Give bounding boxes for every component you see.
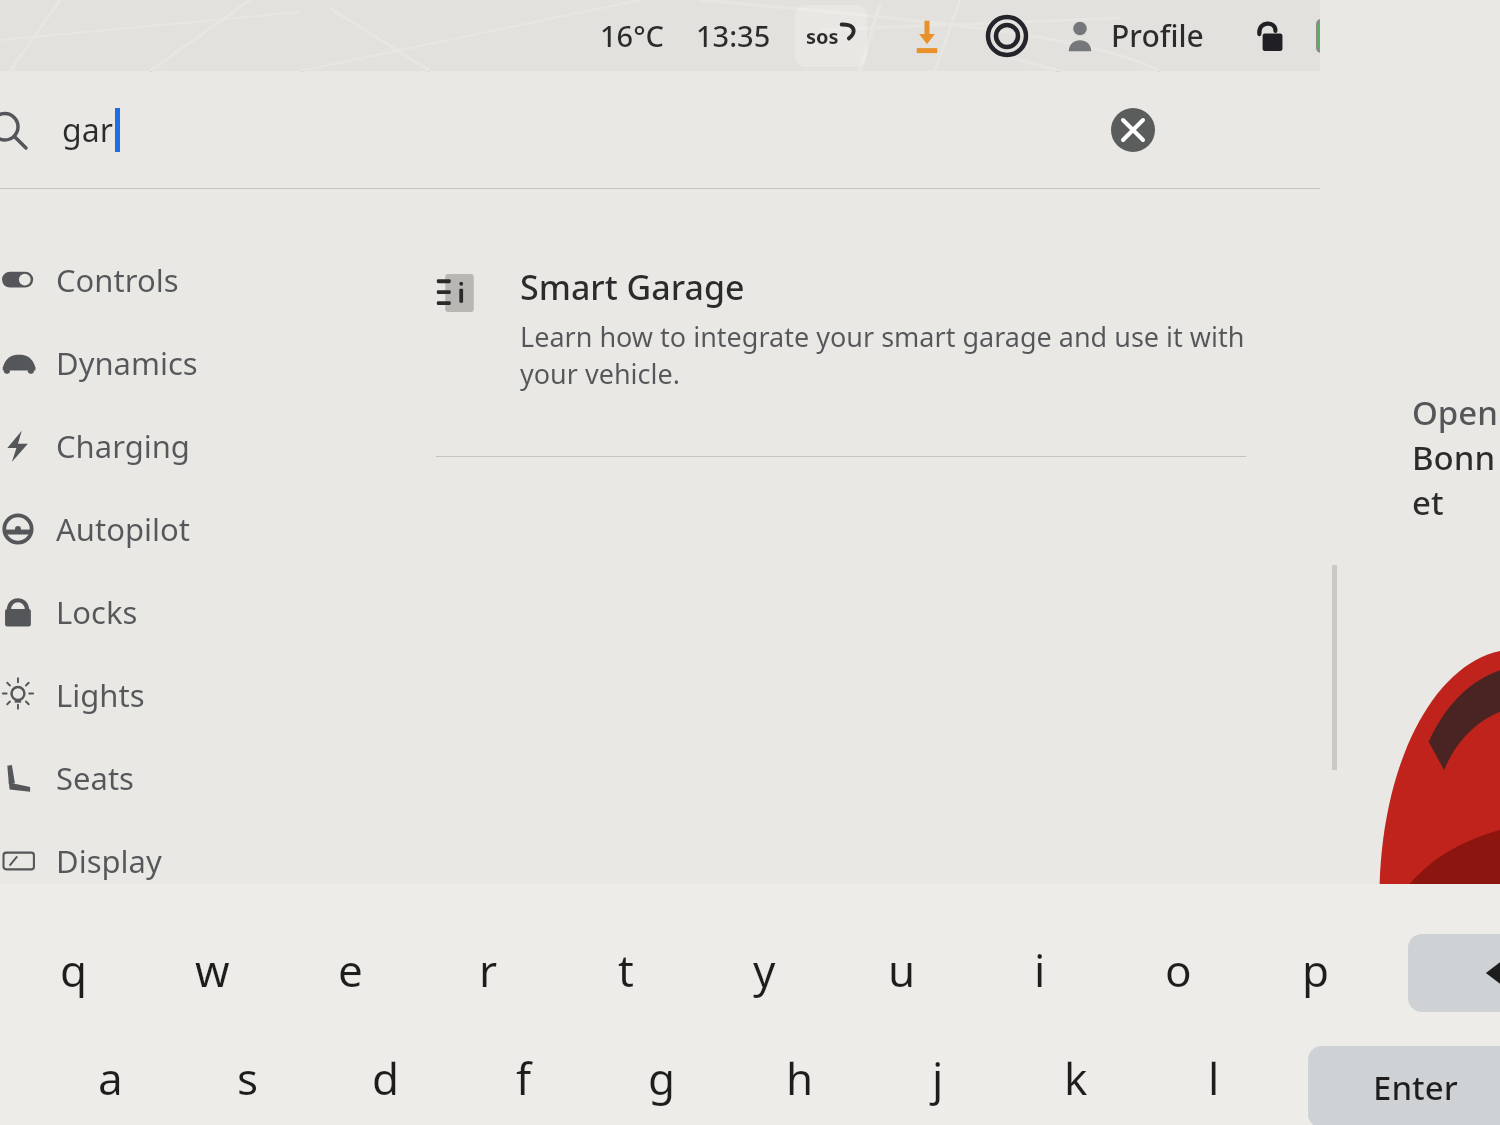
button[interactable]: t xyxy=(570,922,682,1018)
button[interactable]: p xyxy=(1260,922,1372,1018)
staticText: s xyxy=(237,1048,259,1108)
staticText: h xyxy=(786,1048,814,1108)
staticText: j xyxy=(932,1048,944,1108)
button[interactable]: Controls xyxy=(0,238,300,321)
staticText: Open xyxy=(1412,390,1498,435)
button[interactable]: Open xyxy=(1320,390,1500,525)
staticText: a xyxy=(98,1048,123,1108)
staticText: o xyxy=(1165,940,1192,1000)
button[interactable]: Vehicle status xyxy=(979,8,1035,64)
staticText: Learn how to integrate your smart garage… xyxy=(520,318,1246,392)
button[interactable]: Enter xyxy=(1308,1046,1500,1125)
button[interactable]: Software update download xyxy=(901,10,953,62)
button[interactable]: Backspace xyxy=(1408,934,1500,1012)
button[interactable]: k xyxy=(1020,1030,1132,1125)
staticText: gar xyxy=(62,108,113,152)
button[interactable]: Lock vehicle xyxy=(1244,11,1294,61)
button[interactable]: Smart Garage xyxy=(436,258,1246,398)
staticText: Smart Garage xyxy=(520,264,745,310)
button[interactable]: Dynamics xyxy=(0,321,300,404)
button[interactable]: Locks xyxy=(0,570,300,653)
staticText: Lights xyxy=(56,674,145,716)
staticText: t xyxy=(618,940,634,1000)
button[interactable]: Autopilot xyxy=(0,487,300,570)
staticText: Dynamics xyxy=(56,342,198,384)
button[interactable]: h xyxy=(744,1030,856,1125)
button[interactable]: q xyxy=(18,922,130,1018)
button[interactable]: g xyxy=(606,1030,718,1125)
button[interactable]: SOS emergency call xyxy=(795,5,867,67)
button[interactable]: Clear search xyxy=(1111,108,1155,152)
button[interactable]: l xyxy=(1158,1030,1270,1125)
staticText: g xyxy=(648,1048,676,1108)
button[interactable]: a xyxy=(54,1030,166,1125)
button[interactable]: Profile xyxy=(1057,15,1210,56)
staticText: sos xyxy=(806,23,839,50)
button[interactable]: o xyxy=(1122,922,1234,1018)
staticText: Controls xyxy=(56,259,179,301)
staticText: r xyxy=(479,940,498,1000)
button[interactable]: Lights xyxy=(0,653,300,736)
staticText: f xyxy=(516,1048,532,1108)
button[interactable]: y xyxy=(708,922,820,1018)
staticText: Charging xyxy=(56,425,190,467)
button[interactable]: Seats xyxy=(0,736,300,819)
staticText: Locks xyxy=(56,591,138,633)
button[interactable]: Display xyxy=(0,819,300,902)
button[interactable]: i xyxy=(984,922,1096,1018)
staticText: u xyxy=(888,940,916,1000)
button[interactable]: r xyxy=(432,922,544,1018)
staticText: Bonnet xyxy=(1412,435,1500,525)
staticText: Autopilot xyxy=(56,508,190,550)
staticText: 13:35 xyxy=(696,16,771,55)
button[interactable]: Charging xyxy=(0,404,300,487)
staticText: e xyxy=(338,940,363,1000)
button[interactable]: w xyxy=(156,922,268,1018)
staticText: p xyxy=(1302,940,1330,1000)
button[interactable]: u xyxy=(846,922,958,1018)
staticText: Display xyxy=(56,840,162,882)
button[interactable]: e xyxy=(294,922,406,1018)
button[interactable]: d xyxy=(330,1030,442,1125)
button[interactable]: j xyxy=(882,1030,994,1125)
staticText: k xyxy=(1064,1048,1088,1108)
staticText: q xyxy=(60,940,88,1000)
staticText: d xyxy=(372,1048,400,1108)
button[interactable]: s xyxy=(192,1030,304,1125)
staticText: l xyxy=(1208,1048,1220,1108)
staticText: Enter xyxy=(1373,1065,1458,1110)
staticText: w xyxy=(195,940,230,1000)
staticText: Profile xyxy=(1111,15,1204,56)
staticText: 16°C xyxy=(600,16,664,55)
staticText: Seats xyxy=(56,757,134,799)
staticText: y xyxy=(753,940,776,1000)
button[interactable]: f xyxy=(468,1030,580,1125)
staticText: i xyxy=(1034,940,1046,1000)
